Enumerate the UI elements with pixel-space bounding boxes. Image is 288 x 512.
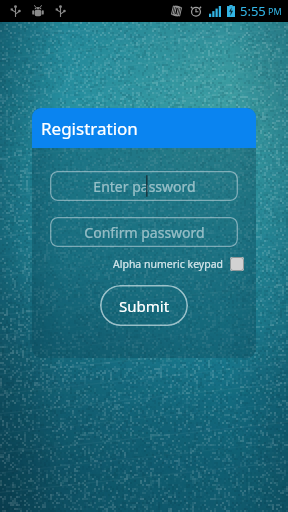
button[interactable]: Alpha numeric keypad: [32, 257, 244, 271]
button[interactable]: Submit: [100, 285, 188, 326]
button[interactable]: Confirm password: [50, 217, 238, 247]
staticText: Registration: [41, 117, 138, 140]
staticText: 5:55: [240, 2, 266, 20]
staticText: PM: [268, 5, 282, 17]
button[interactable]: Enter password: [50, 171, 238, 201]
staticText: Confirm password: [84, 223, 205, 242]
staticText: Alpha numeric keypad: [113, 257, 223, 271]
staticText: Enter password: [93, 177, 196, 196]
staticText: Submit: [119, 296, 170, 316]
